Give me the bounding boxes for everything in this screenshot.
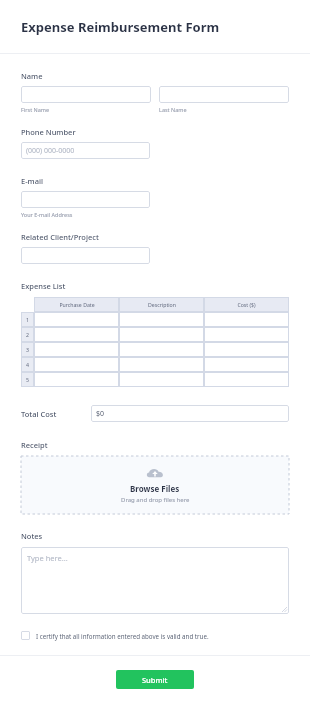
staticText: E-mail xyxy=(21,176,44,186)
staticText: Total Cost xyxy=(21,409,57,419)
button[interactable] xyxy=(159,86,289,103)
button[interactable]: $0 xyxy=(91,405,289,422)
staticText: 5 xyxy=(26,376,29,383)
staticText: Description xyxy=(148,301,176,308)
staticText: Phone Number xyxy=(21,127,76,137)
staticText: $0 xyxy=(96,409,105,419)
staticText: 3 xyxy=(26,346,29,353)
staticText: Notes xyxy=(21,531,43,541)
staticText: Cost ($) xyxy=(237,301,256,308)
button[interactable]: Purchase Date xyxy=(21,297,289,387)
staticText: (000) 000-0000 xyxy=(26,146,75,156)
button[interactable]: Browse Files, drag and drop files here xyxy=(21,456,289,514)
staticText: Last Name xyxy=(159,106,187,113)
button[interactable] xyxy=(21,86,151,103)
staticText: Your E-mail Address xyxy=(21,211,73,218)
staticText: Type here... xyxy=(27,553,68,563)
staticText: Drag and drop files here xyxy=(121,496,190,504)
button[interactable] xyxy=(21,247,150,264)
staticText: 4 xyxy=(26,361,29,368)
staticText: I certify that all information entered a… xyxy=(36,632,209,640)
button[interactable]: Submit xyxy=(116,670,194,689)
button[interactable]: Type here... xyxy=(21,547,289,614)
button[interactable]: I certify that all information entered a… xyxy=(21,631,289,640)
staticText: 1 xyxy=(26,316,29,323)
button[interactable] xyxy=(21,191,150,208)
staticText: First Name xyxy=(21,106,50,113)
staticText: Name xyxy=(21,71,43,81)
staticText: 2 xyxy=(26,331,29,338)
staticText: Receipt xyxy=(21,440,48,450)
staticText: Browse Files xyxy=(130,483,180,494)
staticText: Purchase Date xyxy=(59,301,95,308)
staticText: Expense Reimbursement Form xyxy=(21,18,220,36)
staticText: Expense List xyxy=(21,281,66,291)
staticText: Submit xyxy=(142,675,168,685)
button[interactable]: (000) 000-0000 xyxy=(21,142,150,159)
staticText: Related Client/Project xyxy=(21,232,99,242)
